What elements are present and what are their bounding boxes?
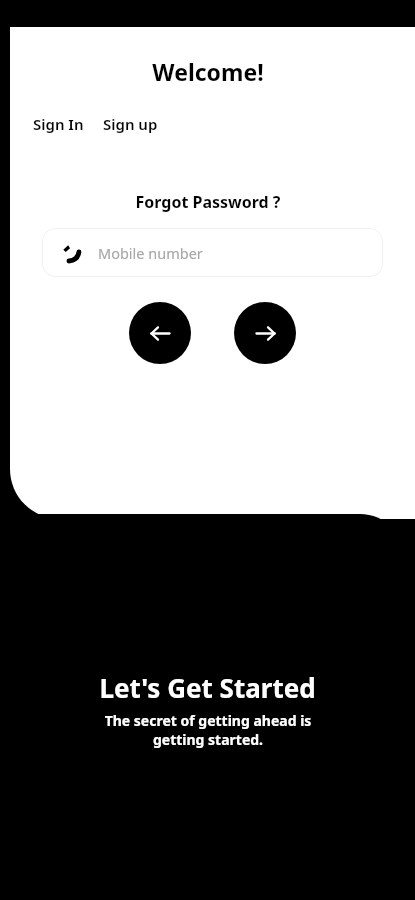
staticText: Mobile number xyxy=(98,243,203,263)
staticText: Sign In xyxy=(33,114,84,134)
staticText: Forgot Password ? xyxy=(135,191,281,213)
button[interactable]: Mobile number xyxy=(42,228,383,277)
button[interactable]: Sign In xyxy=(29,110,88,138)
staticText: The secret of getting ahead is getting s… xyxy=(88,711,328,749)
staticText: Let's Get Started xyxy=(99,670,316,705)
staticText: Sign up xyxy=(103,114,158,134)
staticText: Welcome! xyxy=(152,56,264,87)
button[interactable]: Sign up xyxy=(99,110,162,138)
button[interactable]: Next xyxy=(234,302,296,364)
button[interactable]: Back xyxy=(129,302,191,364)
